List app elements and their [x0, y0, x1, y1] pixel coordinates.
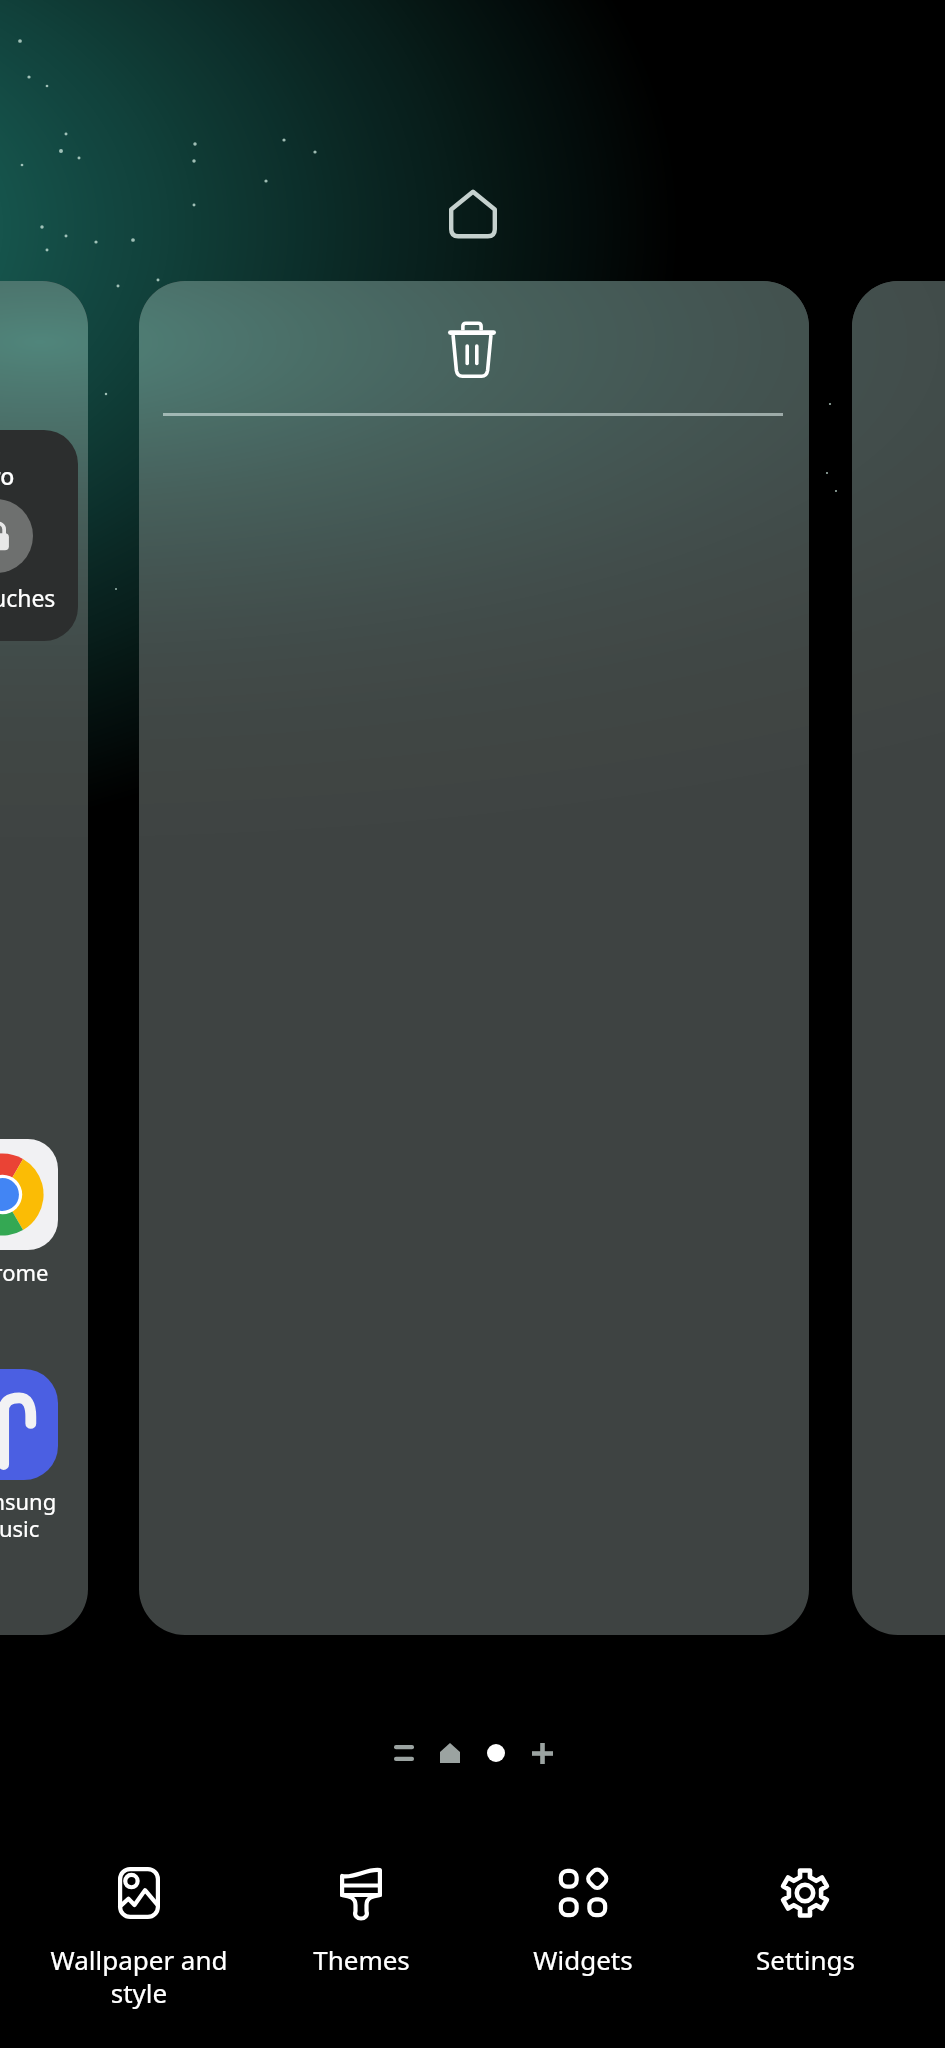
- button[interactable]: Home page: [427, 1730, 473, 1776]
- button[interactable]: Widgets: [472, 1852, 694, 1977]
- button[interactable]: ro: [0, 281, 88, 1635]
- staticText: Samsung: [0, 1486, 57, 1516]
- staticText: ouches: [0, 582, 56, 613]
- staticText: Themes: [313, 1942, 410, 1977]
- button[interactable]: Remove page: [448, 320, 496, 378]
- staticText: Chrome: [0, 1257, 49, 1287]
- staticText: Music: [0, 1513, 40, 1543]
- staticText: Widgets: [533, 1942, 633, 1977]
- button[interactable]: App list page: [381, 1730, 427, 1776]
- button[interactable]: Wallpaper and style: [28, 1852, 250, 2011]
- button[interactable]: Themes: [250, 1852, 472, 1977]
- button[interactable]: Home screen: [442, 183, 504, 245]
- staticText: Wallpaper and style: [50, 1942, 228, 2011]
- staticText: Settings: [756, 1942, 855, 1977]
- button[interactable]: Current page: [473, 1730, 519, 1776]
- staticText: ro: [0, 460, 15, 491]
- button[interactable]: Remove page: [139, 281, 809, 1635]
- button[interactable]: Settings: [694, 1852, 916, 1977]
- button[interactable]: Add page: [519, 1730, 565, 1776]
